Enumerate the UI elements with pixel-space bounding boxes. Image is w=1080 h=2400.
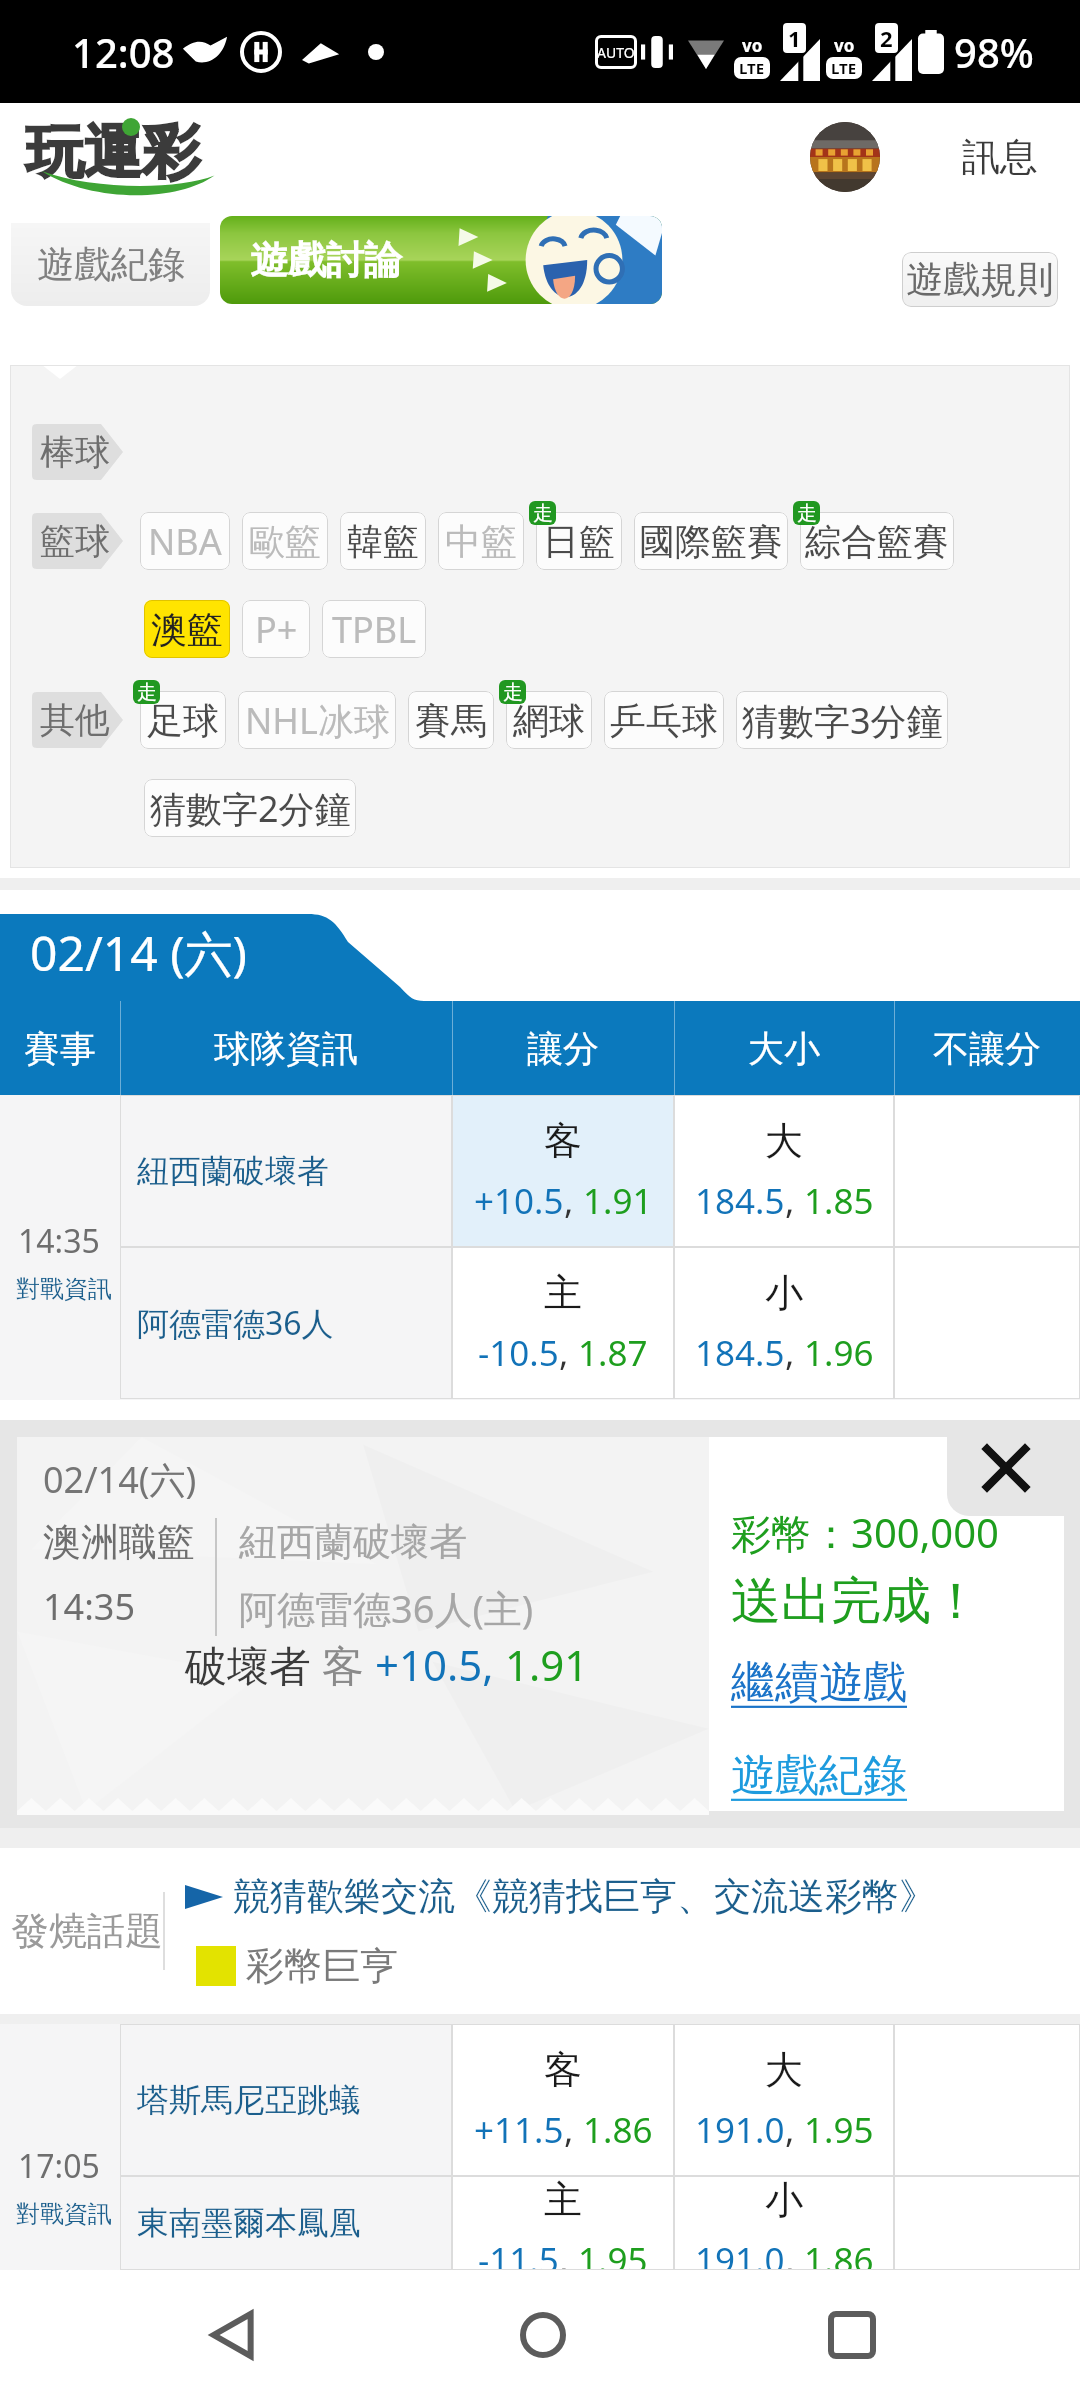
button[interactable]: 小 [674,2176,894,2270]
button[interactable]: 猜數字3分鐘 [736,691,948,749]
button[interactable]: 日籃 [536,512,622,570]
button[interactable]: 對戰資訊 [16,1274,112,1304]
staticText: 發燒話題 [11,1907,163,1955]
staticText: 小 [765,1269,803,1317]
button[interactable]: 韓籃 [340,512,426,570]
staticText: 小 [765,2176,803,2224]
staticText: 大 [765,1117,803,1165]
button[interactable]: 球隊資訊 [120,1001,452,1095]
button[interactable]: 競猜歡樂交流《競猜找巨亨、交流送彩幣》 [233,1873,936,1920]
staticText: 澳籃 [151,607,223,652]
button[interactable]: 客 [452,1095,674,1247]
staticText: NHL冰球 [245,696,390,745]
button[interactable]: 讓分 [452,1001,674,1095]
staticText: +11.5 [474,2106,564,2154]
staticText: 1 [788,23,801,53]
button[interactable]: NBA [140,512,230,570]
button[interactable]: Profile [810,122,880,192]
button[interactable]: 繼續遊戲 [731,1655,907,1710]
button[interactable]: 遊戲紀錄 [11,223,210,306]
staticText: 其他 [40,698,110,742]
button[interactable]: 遊戲紀錄 [731,1748,907,1803]
button[interactable]: 不讓分 [894,1001,1080,1095]
button[interactable]: 大 [674,2024,894,2176]
button[interactable]: 網球 [506,691,592,749]
staticText: , [785,2236,804,2270]
staticText: AUTO [597,43,635,62]
button[interactable]: 賽事 [0,1001,120,1095]
staticText: 主 [544,1269,582,1317]
staticText: LTE [831,58,857,78]
button[interactable]: 遊戲討論 [220,216,662,304]
staticText: 大 [765,2046,803,2094]
button[interactable]: 小 [674,1247,894,1399]
staticText: 歐籃 [249,519,321,564]
button[interactable]: NHL冰球 [238,691,396,749]
button[interactable]: 乒乓球 [604,691,724,749]
staticText: 走 [137,680,157,704]
button[interactable] [894,2024,1080,2176]
button[interactable]: 澳籃 [144,600,230,658]
staticText: , [559,1329,578,1377]
staticText: 大小 [748,1026,820,1071]
button[interactable]: 客 [452,2024,674,2176]
staticText: 足球 [147,698,219,743]
button[interactable]: Recents [792,2275,912,2395]
button[interactable]: 賽馬 [408,691,494,749]
staticText: +10.5, [375,1636,505,1693]
button[interactable]: 主 [452,1247,674,1399]
staticText: 賽事 [24,1026,96,1071]
button[interactable]: 大 [674,1095,894,1247]
staticText: 1.86 [583,2106,653,2154]
staticText: 14:35 [18,1219,100,1263]
button[interactable]: 紐西蘭破壞者 [120,1095,452,1247]
staticText: 阿德雷德36人(主) [239,1582,534,1634]
button[interactable]: Home [483,2275,603,2395]
staticText: 猜數字3分鐘 [742,696,943,745]
button[interactable]: TPBL [322,600,426,658]
button[interactable]: 主 [452,2176,674,2270]
staticText: 17:05 [18,2144,100,2188]
staticText: , [564,1177,583,1225]
button[interactable]: 彩幣巨亨 [246,1942,398,1990]
button[interactable]: 綜合籃賽 [800,512,954,570]
button[interactable]: 足球 [140,691,226,749]
button[interactable]: P+ [242,600,310,658]
staticText: 191.0 [695,2106,785,2154]
staticText: 澳洲職籃 [43,1518,195,1566]
staticText: 184.5 [695,1329,785,1377]
staticText: 賽馬 [415,698,487,743]
button[interactable] [894,1095,1080,1247]
staticText: TPBL [332,605,417,654]
button[interactable]: 歐籃 [242,512,328,570]
button[interactable]: 阿德雷德36人 [120,1247,452,1399]
staticText: 玩運彩 [26,116,200,189]
button[interactable]: 遊戲規則 [902,252,1058,307]
staticText: 走 [797,501,817,525]
button[interactable]: 訊息 [962,133,1038,181]
button[interactable]: 中籃 [438,512,524,570]
staticText: 1.85 [804,1177,874,1225]
staticText: 送出完成！ [731,1570,981,1633]
staticText: 14:35 [43,1582,136,1631]
staticText: 遊戲規則 [906,256,1054,303]
staticText: 1.87 [578,1329,648,1377]
button[interactable]: Back [173,2275,293,2395]
button[interactable]: 塔斯馬尼亞跳蟻 [120,2024,452,2176]
button[interactable]: 對戰資訊 [16,2199,112,2229]
staticText: 破壞者 [185,1636,322,1693]
button[interactable] [894,1247,1080,1399]
staticText: 走 [533,501,553,525]
button[interactable]: Close [947,1420,1064,1516]
staticText: 塔斯馬尼亞跳蟻 [137,2080,361,2120]
button[interactable] [894,2176,1080,2270]
button[interactable]: 大小 [674,1001,894,1095]
button[interactable]: 猜數字2分鐘 [144,779,356,837]
staticText: 紐西蘭破壞者 [137,1151,329,1191]
staticText: -10.5 [478,1329,559,1377]
staticText: 阿德雷德36人 [137,1301,334,1345]
button[interactable]: 國際籃賽 [634,512,788,570]
staticText: 遊戲討論 [250,236,402,284]
staticText: 2 [880,23,893,53]
button[interactable]: 東南墨爾本鳳凰 [120,2176,452,2270]
